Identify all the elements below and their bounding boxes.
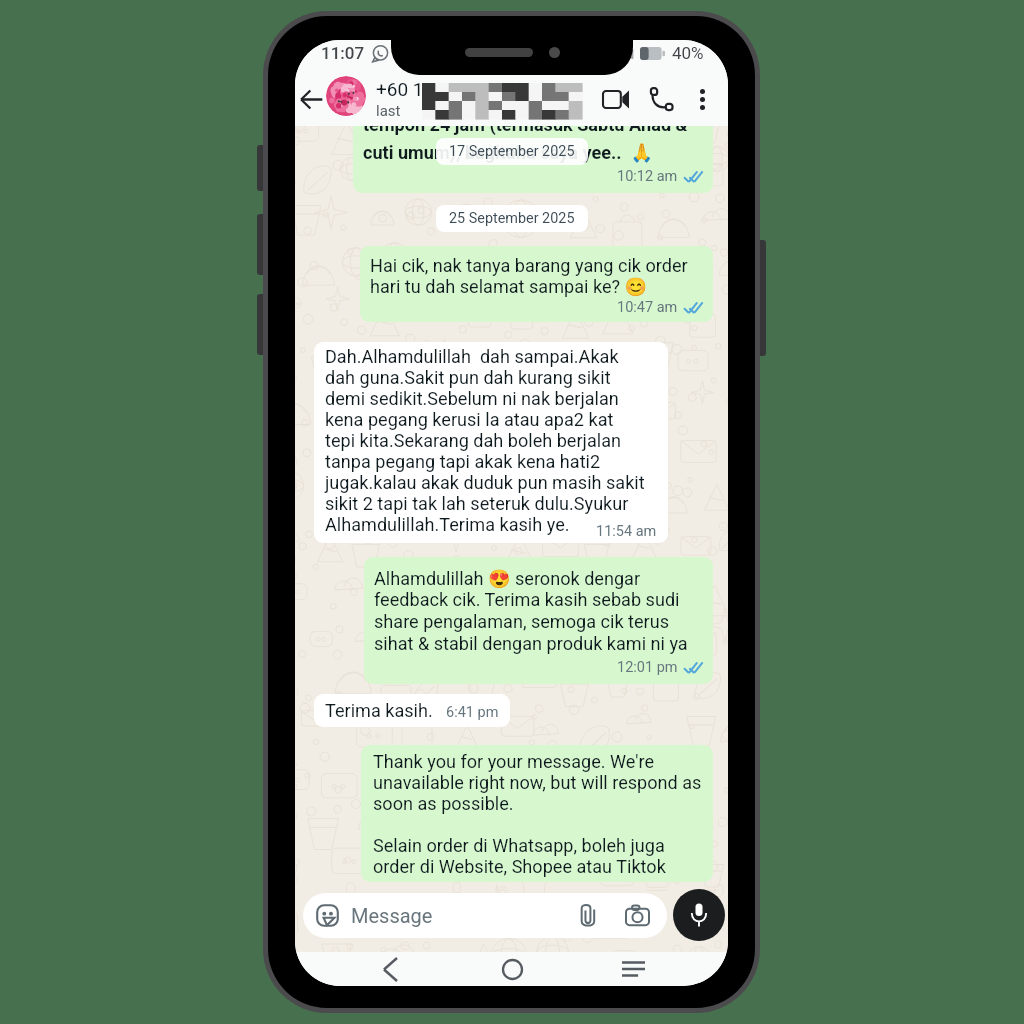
staticText: last	[376, 102, 401, 120]
staticText: Alhamdulillah 😍 seronok dengar feedback …	[374, 568, 688, 655]
button[interactable]: Recent apps	[606, 952, 660, 986]
staticText: tempoh 24 jam (termasuk Sabtu Ahad & cut…	[363, 126, 688, 164]
button[interactable]: Voice message	[673, 889, 725, 941]
button[interactable]: Profile photo	[326, 76, 366, 116]
staticText: 11:07	[321, 43, 365, 63]
button[interactable]: 25 September 2025	[436, 205, 588, 232]
staticText: 10:47 am	[617, 299, 678, 316]
button[interactable]: Thank you for your message. We're unavai…	[361, 745, 713, 882]
button[interactable]: Voice call	[640, 78, 682, 120]
button[interactable]: tempoh 24 jam (termasuk Sabtu Ahad & cut…	[353, 126, 713, 193]
staticText: 10:12 am	[617, 168, 678, 185]
button[interactable]: 17 September 2025	[436, 138, 588, 165]
button[interactable]: Video call	[594, 78, 636, 120]
button[interactable]: Dah.Alhamdulillah dah sampai.Akak dah gu…	[314, 342, 668, 543]
button[interactable]: Back	[296, 81, 326, 117]
staticText: 6:41 pm	[446, 704, 499, 721]
button[interactable]: Hai cik, nak tanya barang yang cik order…	[360, 246, 713, 322]
staticText: +60 1	[376, 78, 424, 100]
staticText: 11:54 am	[596, 523, 657, 540]
staticText: Terima kasih.	[325, 700, 433, 721]
button[interactable]: Home	[485, 952, 539, 986]
staticText: 17 September 2025	[449, 143, 575, 160]
staticText: 40%	[672, 43, 704, 63]
staticText: Dah.Alhamdulillah dah sampai.Akak dah gu…	[325, 346, 645, 535]
button[interactable]: Message	[303, 893, 667, 938]
staticText: Hai cik, nak tanya barang yang cik order…	[370, 255, 688, 297]
staticText: 25 September 2025	[449, 210, 575, 227]
button[interactable]: Terima kasih.	[314, 694, 510, 727]
staticText: Message	[351, 904, 433, 927]
button[interactable]: Alhamdulillah 😍 seronok dengar feedback …	[364, 557, 713, 684]
button[interactable]: More options	[684, 81, 720, 117]
staticText: Thank you for your message. We're unavai…	[373, 751, 702, 877]
staticText: 12:01 pm	[617, 659, 678, 676]
button[interactable]: Back	[363, 952, 417, 986]
